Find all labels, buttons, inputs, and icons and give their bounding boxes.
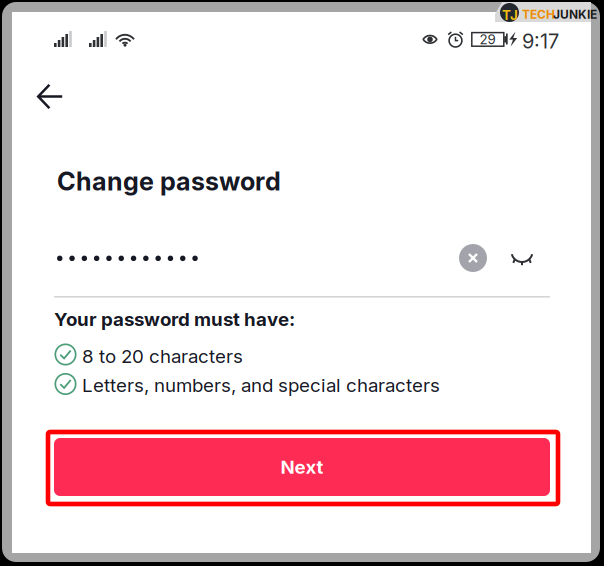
staticText: Your password must have: [54, 308, 295, 331]
staticText: Change password [57, 166, 281, 197]
button[interactable]: Back [27, 74, 73, 120]
button[interactable]: Show password [506, 246, 538, 272]
button[interactable]: Next [54, 438, 550, 496]
staticText: 9:17 [522, 29, 559, 53]
button[interactable]: Clear password [459, 244, 487, 272]
staticText: JUNKIE [553, 7, 597, 21]
staticText: Next [280, 456, 323, 478]
staticText: TECH [522, 7, 555, 21]
staticText: 8 to 20 characters [82, 345, 243, 368]
staticText: TJ [502, 7, 518, 23]
staticText: 29 [479, 31, 495, 47]
staticText: Letters, numbers, and special characters [82, 374, 440, 397]
